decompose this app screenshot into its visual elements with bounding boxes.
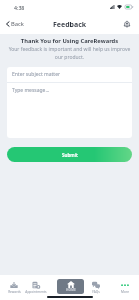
button[interactable]: Rewards — [1, 278, 27, 296]
staticText: Enter subject matter — [12, 71, 61, 78]
staticText: Type message... — [12, 87, 50, 94]
staticText: Back — [11, 20, 24, 28]
staticText: Feedback — [53, 20, 87, 30]
button[interactable]: Appointments — [23, 278, 49, 296]
button[interactable]: Enter subject matter — [7, 67, 132, 82]
staticText: Submit — [62, 152, 78, 158]
staticText: FAQs — [92, 290, 100, 294]
button[interactable]: More — [112, 278, 138, 296]
staticText: Rewards — [8, 290, 21, 294]
staticText: More — [121, 290, 129, 294]
button[interactable]: Submit — [7, 147, 132, 162]
button[interactable]: FAQs — [83, 278, 109, 296]
button[interactable]: Type message... — [7, 83, 132, 138]
button[interactable]: HOME — [57, 279, 84, 294]
staticText: Appointments — [25, 290, 47, 294]
button[interactable]: Notifications — [121, 18, 133, 30]
button[interactable]: Back — [3, 18, 27, 30]
staticText: 4:38 — [14, 4, 25, 11]
staticText: Your feedback is important and will help… — [6, 46, 133, 60]
staticText: HOME — [66, 288, 76, 292]
staticText: Thank You for Using CareRewards — [8, 37, 131, 45]
